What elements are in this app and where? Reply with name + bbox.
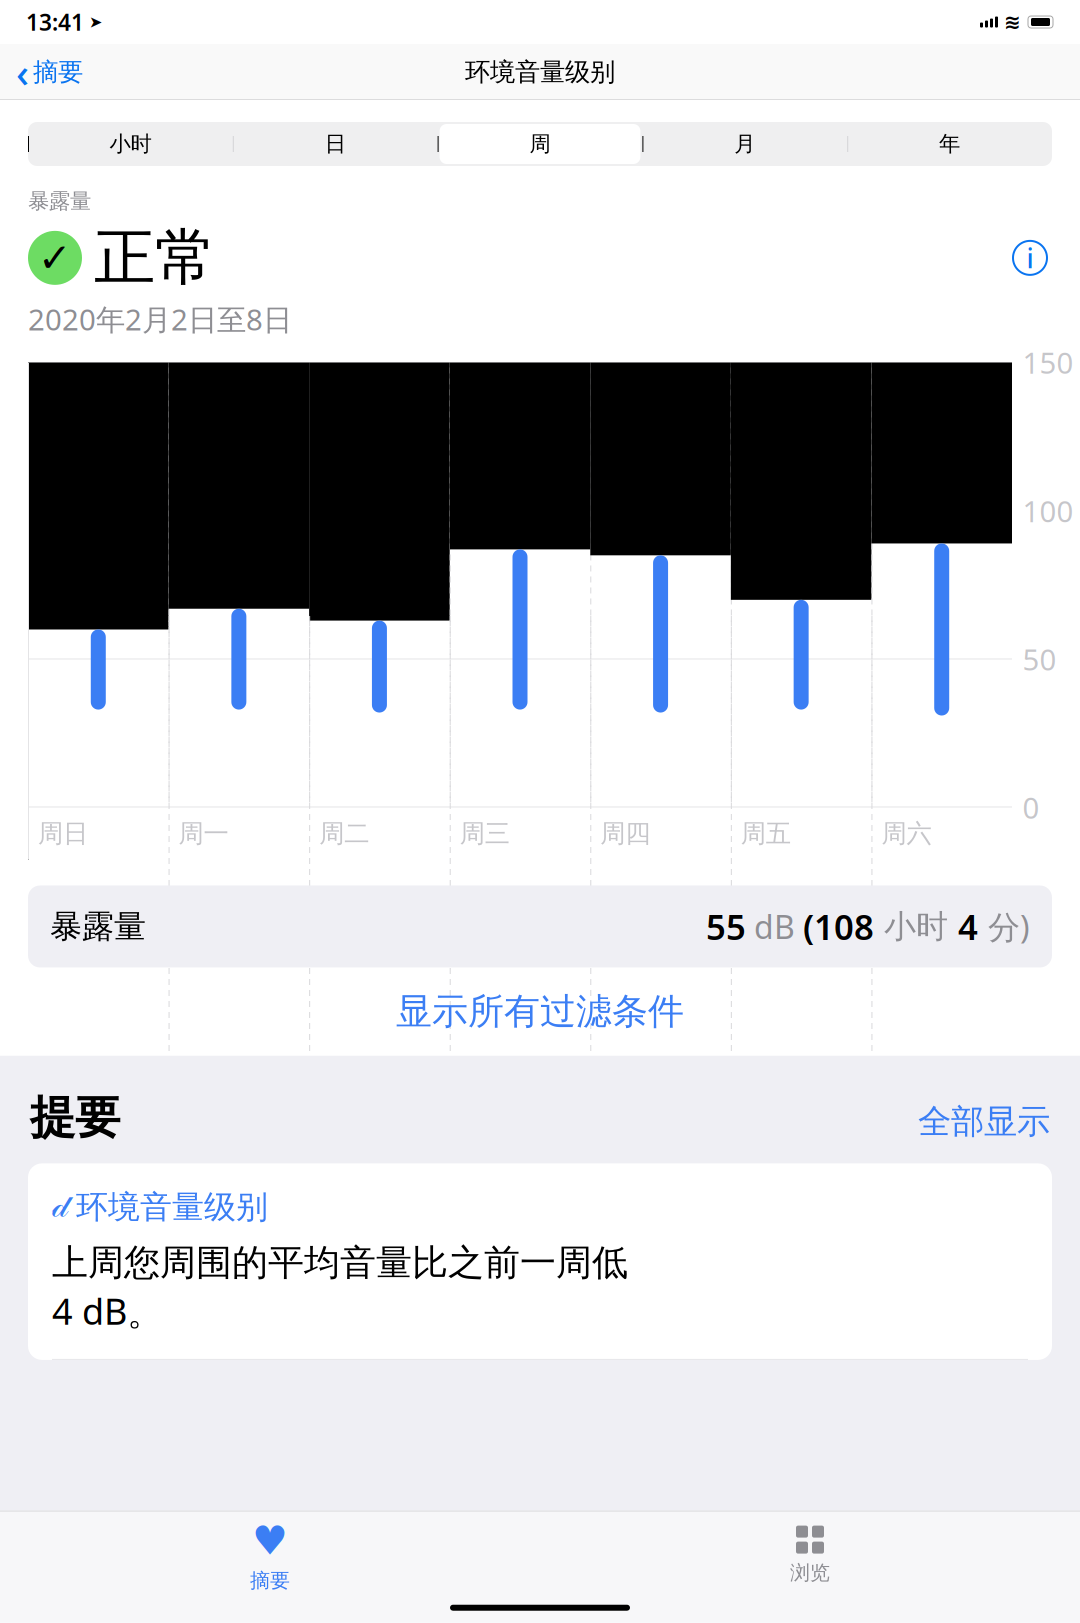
staticText: ➤ — [89, 13, 102, 31]
button[interactable]: 显示所有过滤条件 — [0, 967, 1080, 1056]
staticText: 环境音量级别 — [465, 56, 615, 87]
staticText: 显示所有过滤条件 — [396, 989, 684, 1034]
staticText: 小时 — [109, 131, 151, 157]
staticText: 摘要 — [250, 1568, 290, 1593]
staticText: 100 — [1022, 491, 1073, 530]
staticText: 分) — [978, 905, 1030, 948]
button[interactable]: 浏览 — [540, 1516, 1080, 1585]
staticText: 正常 — [94, 220, 216, 295]
staticText: 0 — [1022, 788, 1039, 827]
staticText: ≋ — [1004, 11, 1021, 33]
button[interactable]: 全部显示 — [918, 1101, 1050, 1142]
staticText: i — [1026, 240, 1033, 276]
button[interactable]: 日 — [233, 122, 438, 166]
staticText: ✓ — [38, 235, 72, 281]
staticText: 150 — [1022, 343, 1073, 382]
staticText: 暴露量 — [28, 188, 91, 214]
staticText: 暴露量 — [50, 907, 146, 946]
button[interactable]: 月 — [642, 122, 847, 166]
staticText: 50 — [1022, 640, 1056, 679]
staticText: 摘要 — [33, 56, 83, 87]
staticText: 全部显示 — [918, 1101, 1050, 1142]
staticText: 周 — [529, 131, 550, 157]
staticText: 13:41 — [26, 7, 84, 37]
staticText: 年 — [939, 131, 960, 157]
button[interactable]: ‹ — [0, 39, 83, 104]
staticText: 浏览 — [790, 1561, 830, 1585]
staticText: 上周您周围的平均音量比之前一周低 — [52, 1241, 628, 1285]
staticText: 周二 — [319, 818, 369, 849]
staticText: 环境音量级别 — [76, 1187, 268, 1227]
staticText: ‹ — [16, 45, 29, 98]
staticText: 4 — [958, 903, 978, 949]
staticText: (108 — [803, 903, 874, 949]
staticText: 小时 — [874, 907, 958, 946]
button[interactable]: 小时 — [28, 122, 233, 166]
staticText: 周六 — [881, 818, 931, 849]
staticText: 4 dB。 — [52, 1287, 163, 1335]
staticText: 提要 — [30, 1090, 120, 1145]
staticText: 周一 — [179, 818, 229, 849]
staticText: 55 — [706, 903, 746, 949]
staticText: 周日 — [38, 818, 88, 849]
staticText: 日 — [325, 131, 346, 157]
staticText: ♥ — [252, 1518, 288, 1563]
staticText: 𝒹 — [52, 1191, 68, 1223]
button[interactable]: 年 — [847, 122, 1052, 166]
button[interactable]: ♥ — [0, 1508, 540, 1593]
button[interactable]: 周 — [438, 122, 642, 166]
staticText: 月 — [734, 131, 755, 157]
button[interactable]: 关于暴露量 — [1008, 236, 1052, 280]
staticText: 周三 — [460, 818, 510, 849]
staticText: dB — [746, 905, 803, 948]
staticText: 周四 — [600, 818, 650, 849]
staticText: 2020年2月2日至8日 — [28, 299, 292, 338]
staticText: 周五 — [741, 818, 791, 849]
